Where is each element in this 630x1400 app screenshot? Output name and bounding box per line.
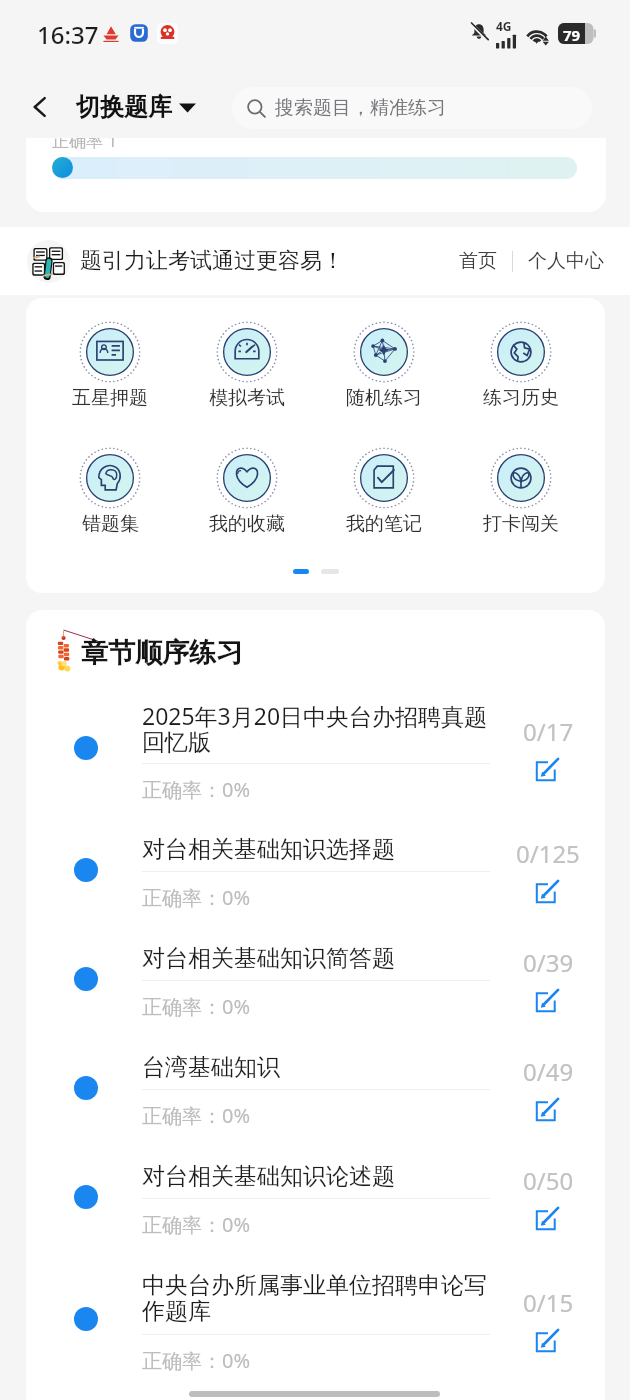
staticText: 对台相关基础知识选择题 <box>142 835 490 864</box>
staticText: 正确率 1 <box>52 138 118 152</box>
staticText: 正确率：0% <box>142 1347 251 1374</box>
staticText: 0/49 <box>523 1055 574 1088</box>
staticText: 随机练习 <box>346 386 422 410</box>
staticText: 16:37 <box>37 18 99 51</box>
button[interactable]: 切换题库 <box>76 92 196 122</box>
button[interactable]: 我的笔记 <box>332 446 436 536</box>
button[interactable]: Back <box>18 85 62 129</box>
button[interactable]: 我的收藏 <box>195 446 299 536</box>
button[interactable]: 搜索题目，精准练习 <box>232 87 592 129</box>
button[interactable]: 个人中心 <box>526 249 606 273</box>
staticText: 题引力让考试通过更容易！ <box>80 247 344 275</box>
button[interactable]: Edit <box>534 1095 562 1123</box>
staticText: 章节顺序练习 <box>81 636 243 670</box>
staticText: 中央台办所属事业单位招聘申论写作题库 <box>142 1271 490 1326</box>
staticText: 0/39 <box>523 946 574 979</box>
staticText: 正确率：0% <box>142 1211 251 1238</box>
button[interactable]: Edit <box>534 986 562 1014</box>
button[interactable]: 练习历史 <box>469 320 573 410</box>
staticText: 0/15 <box>523 1286 574 1319</box>
staticText: 正确率：0% <box>142 776 251 803</box>
button[interactable]: 2025年3月20日中央台办招聘真题回忆版 <box>26 681 605 816</box>
staticText: 练习历史 <box>483 386 559 410</box>
button[interactable]: 首页 <box>457 249 499 273</box>
button[interactable]: 对台相关基础知识选择题 <box>26 816 605 925</box>
staticText: 模拟考试 <box>209 386 285 410</box>
button[interactable]: 台湾基础知识 <box>26 1034 605 1143</box>
button[interactable]: 对台相关基础知识论述题 <box>26 1143 605 1252</box>
staticText: 0/125 <box>516 837 580 870</box>
button[interactable]: 中央台办所属事业单位招聘申论写作题库 <box>26 1252 605 1387</box>
staticText: 五星押题 <box>72 386 148 410</box>
staticText: 我的笔记 <box>346 512 422 536</box>
button[interactable]: 对台相关基础知识简答题 <box>26 925 605 1034</box>
button[interactable]: 错题集 <box>58 446 162 536</box>
staticText: 切换题库 <box>76 92 172 122</box>
staticText: 打卡闯关 <box>483 512 559 536</box>
staticText: 首页 <box>459 249 497 273</box>
staticText: 2025年3月20日中央台办招聘真题回忆版 <box>142 700 490 757</box>
staticText: 0/50 <box>523 1164 574 1197</box>
staticText: 我的收藏 <box>209 512 285 536</box>
staticText: 正确率：0% <box>142 1102 251 1129</box>
button[interactable]: Edit <box>534 1204 562 1232</box>
staticText: 正确率：0% <box>142 993 251 1020</box>
staticText: 0/17 <box>523 715 574 748</box>
staticText: 搜索题目，精准练习 <box>275 96 446 120</box>
staticText: 错题集 <box>82 512 139 536</box>
staticText: 对台相关基础知识论述题 <box>142 1162 490 1191</box>
button[interactable]: Edit <box>534 1326 562 1354</box>
staticText: 79 <box>563 25 581 45</box>
staticText: 个人中心 <box>528 249 604 273</box>
staticText: 正确率：0% <box>142 884 251 911</box>
button[interactable]: Edit <box>534 877 562 905</box>
button[interactable]: 五星押题 <box>58 320 162 410</box>
staticText: 4G <box>496 18 512 34</box>
button[interactable]: 打卡闯关 <box>469 446 573 536</box>
button[interactable]: 随机练习 <box>332 320 436 410</box>
staticText: 台湾基础知识 <box>142 1053 490 1082</box>
button[interactable]: 模拟考试 <box>195 320 299 410</box>
button[interactable]: Edit <box>534 755 562 783</box>
staticText: 对台相关基础知识简答题 <box>142 944 490 973</box>
